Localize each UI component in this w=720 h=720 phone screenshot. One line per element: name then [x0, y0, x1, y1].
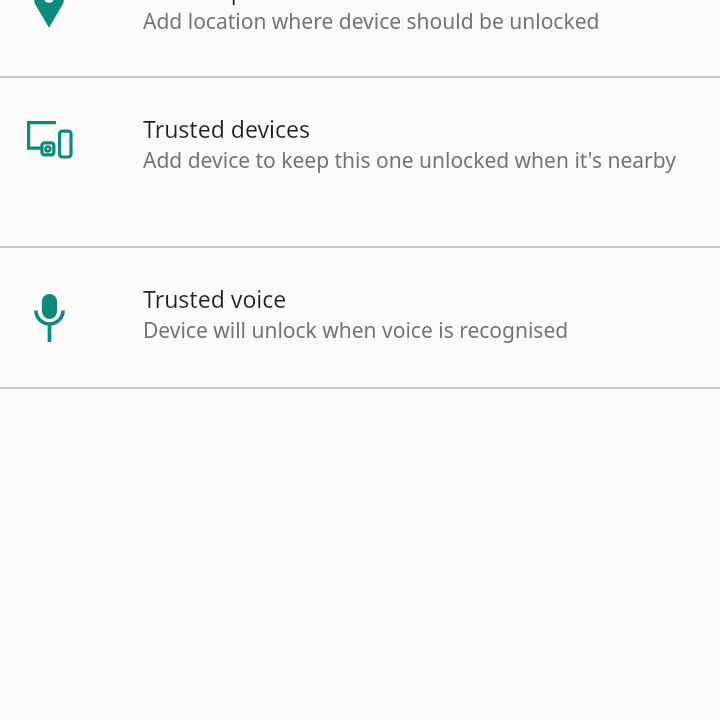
other: Trusted places	[34, 0, 64, 28]
other: Trusted devices	[27, 121, 71, 157]
staticText: Trusted places	[143, 0, 299, 5]
staticText: Device will unlock when voice is recogni…	[143, 316, 569, 345]
button[interactable]: Trusted places	[0, 0, 720, 76]
staticText: Add location where device should be unlo…	[143, 7, 600, 36]
button[interactable]: Trusted voice	[0, 248, 720, 387]
button[interactable]: Trusted devices	[0, 78, 720, 246]
staticText: Add device to keep this one unlocked whe…	[143, 146, 676, 175]
staticText: Trusted voice	[143, 283, 287, 314]
staticText: Trusted devices	[143, 113, 311, 144]
other: Trusted voice	[33, 294, 66, 342]
